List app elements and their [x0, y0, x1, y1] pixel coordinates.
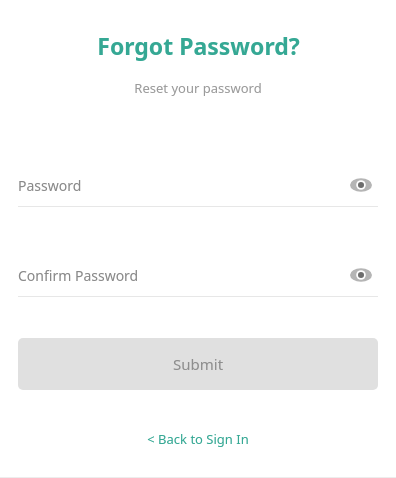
button[interactable]: Show confirm password [344, 261, 378, 289]
staticText: < Back to Sign In [147, 430, 249, 448]
staticText: Reset your password [134, 79, 262, 97]
staticText: Confirm Password [18, 266, 344, 285]
button[interactable]: Show password [344, 171, 378, 199]
staticText: Submit [173, 354, 224, 374]
staticText: Password [18, 176, 344, 195]
button[interactable]: < Back to Sign In [139, 426, 257, 452]
staticText: Forgot Password? [97, 30, 300, 61]
button[interactable]: Submit [18, 338, 378, 390]
